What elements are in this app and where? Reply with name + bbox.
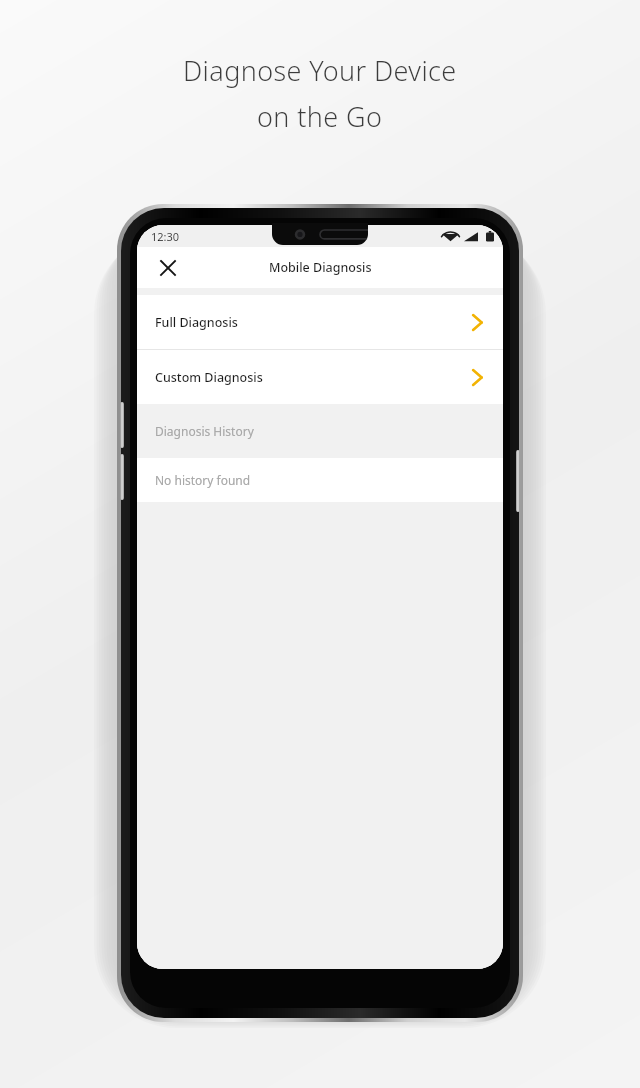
staticText: No history found bbox=[155, 472, 251, 488]
staticText: on the Go bbox=[257, 98, 383, 135]
staticText: Diagnosis History bbox=[155, 423, 254, 439]
staticText: 12:30 bbox=[151, 229, 180, 244]
staticText: Custom Diagnosis bbox=[155, 369, 472, 386]
staticText: Diagnose Your Device bbox=[183, 52, 457, 89]
staticText: Full Diagnosis bbox=[155, 314, 472, 331]
staticText: Mobile Diagnosis bbox=[269, 259, 372, 276]
button[interactable]: Custom Diagnosis bbox=[137, 350, 503, 404]
button[interactable]: Close bbox=[155, 255, 181, 281]
button[interactable]: Full Diagnosis bbox=[137, 295, 503, 349]
